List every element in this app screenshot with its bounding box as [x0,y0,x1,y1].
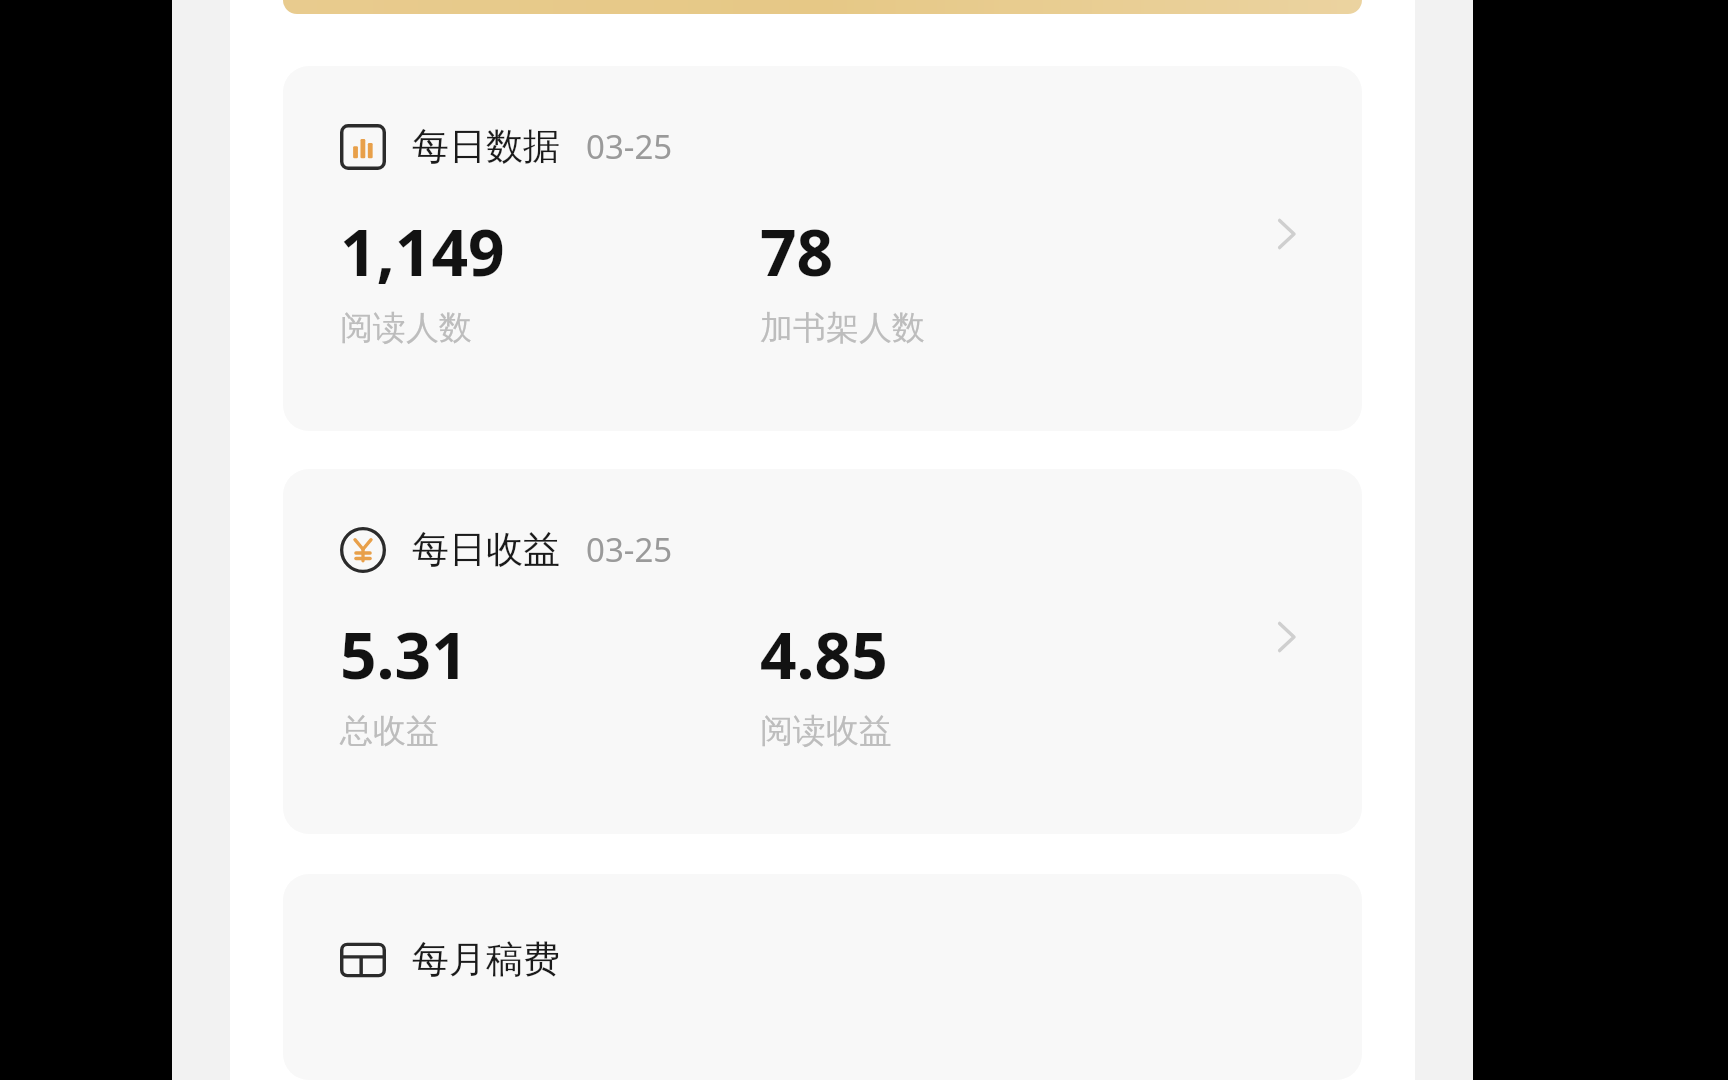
staticText: 1,149 [340,208,505,295]
button[interactable]: 查看详情 [1258,609,1314,665]
staticText: 每日数据 [412,123,560,170]
button[interactable]: 每月稿费 [283,874,1362,1080]
button[interactable]: 每日收益 [283,469,1362,834]
staticText: 03-25 [586,527,673,572]
button[interactable]: 每日数据 [283,66,1362,431]
staticText: 阅读收益 [760,710,892,752]
staticText: 总收益 [340,710,439,752]
staticText: 4.85 [760,611,888,698]
button[interactable]: 查看详情 [1258,206,1314,262]
staticText: 03-25 [586,124,673,169]
staticText: 阅读人数 [340,307,472,349]
staticText: 5.31 [340,611,468,698]
button[interactable] [283,0,1362,14]
staticText: 每月稿费 [412,936,560,983]
staticText: 78 [760,208,834,295]
staticText: 加书架人数 [760,307,925,349]
staticText: 每日收益 [412,526,560,573]
